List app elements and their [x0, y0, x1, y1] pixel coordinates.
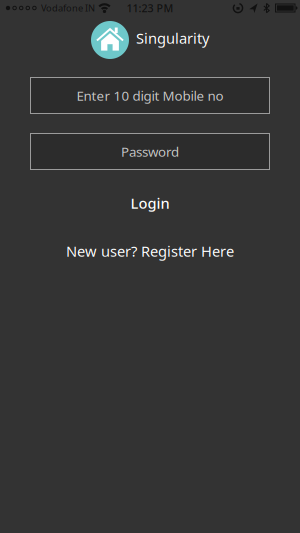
staticText: Vodafone IN — [41, 2, 95, 14]
staticText: Password — [121, 143, 179, 160]
button[interactable]: Login — [110, 188, 190, 218]
button[interactable]: Enter 10 digit Mobile no — [30, 77, 270, 114]
button[interactable]: New user? Register Here — [66, 236, 234, 266]
staticText: Singularity — [136, 28, 209, 48]
staticText: Login — [130, 193, 169, 213]
staticText: Enter 10 digit Mobile no — [76, 87, 223, 104]
staticText: New user? Register Here — [66, 241, 234, 261]
staticText: 11:23 PM — [126, 1, 173, 15]
button[interactable]: Password — [30, 133, 270, 170]
